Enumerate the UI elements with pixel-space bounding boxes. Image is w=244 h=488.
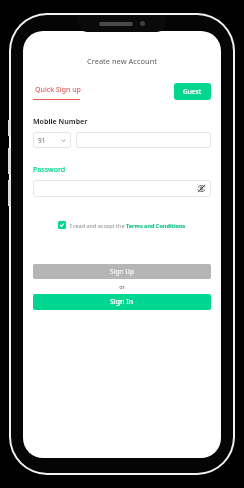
button[interactable]: Show password bbox=[197, 184, 206, 193]
staticText: or bbox=[23, 283, 221, 290]
button[interactable]: Sign In bbox=[33, 294, 211, 310]
staticText: 91 bbox=[38, 136, 46, 145]
button[interactable]: Sign Up bbox=[33, 264, 211, 279]
staticText: Password bbox=[33, 165, 66, 175]
button[interactable]: Show password bbox=[33, 180, 211, 197]
staticText: Create new Account bbox=[23, 56, 221, 66]
staticText: Quick Sign up bbox=[35, 85, 81, 95]
button[interactable]: Guest bbox=[174, 83, 211, 100]
staticText: Mobile Number bbox=[33, 117, 88, 127]
button[interactable]: Quick Sign up bbox=[33, 83, 83, 100]
staticText: Guest bbox=[183, 87, 202, 96]
button[interactable]: I read and accept the bbox=[58, 221, 186, 229]
button[interactable]: 91 bbox=[33, 132, 71, 148]
button[interactable]: Terms and Conditions bbox=[126, 222, 186, 229]
staticText: I read and accept the bbox=[70, 222, 126, 229]
staticText: Sign Up bbox=[110, 267, 134, 276]
staticText: Sign In bbox=[110, 297, 134, 307]
button[interactable] bbox=[76, 132, 211, 148]
